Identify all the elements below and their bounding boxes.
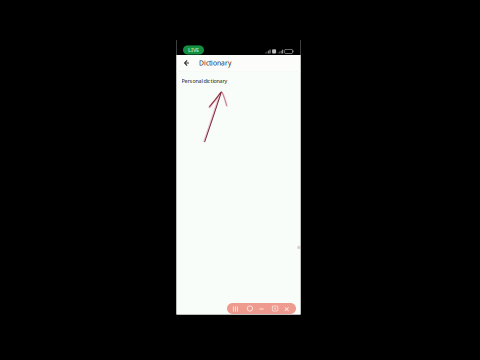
staticText: Personal dictionary (181, 77, 227, 85)
button[interactable]: Screenshot (269, 304, 281, 313)
button[interactable]: Layout (231, 304, 244, 313)
button[interactable]: Back (183, 55, 192, 71)
staticText: Dictionary (199, 59, 231, 67)
button[interactable]: Pause (256, 304, 269, 313)
button[interactable]: Record (244, 304, 256, 313)
button[interactable]: Close (281, 304, 294, 313)
staticText: LIVE (188, 46, 199, 53)
button[interactable]: Personal dictionary (176, 71, 300, 90)
